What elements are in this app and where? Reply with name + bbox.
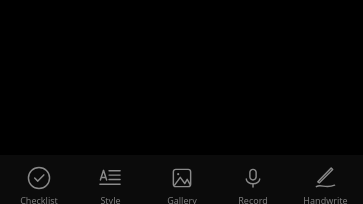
staticText: Record bbox=[238, 194, 268, 204]
staticText: Gallery bbox=[167, 194, 197, 204]
button[interactable]: Checklist bbox=[6, 155, 72, 204]
button[interactable]: Gallery bbox=[149, 155, 215, 204]
button[interactable]: Handwrite bbox=[292, 155, 358, 204]
staticText: Style bbox=[100, 194, 121, 204]
staticText: Handwrite bbox=[303, 194, 348, 204]
staticText: Checklist bbox=[20, 194, 58, 204]
button[interactable]: Record bbox=[220, 155, 286, 204]
button[interactable]: Style bbox=[77, 155, 143, 204]
